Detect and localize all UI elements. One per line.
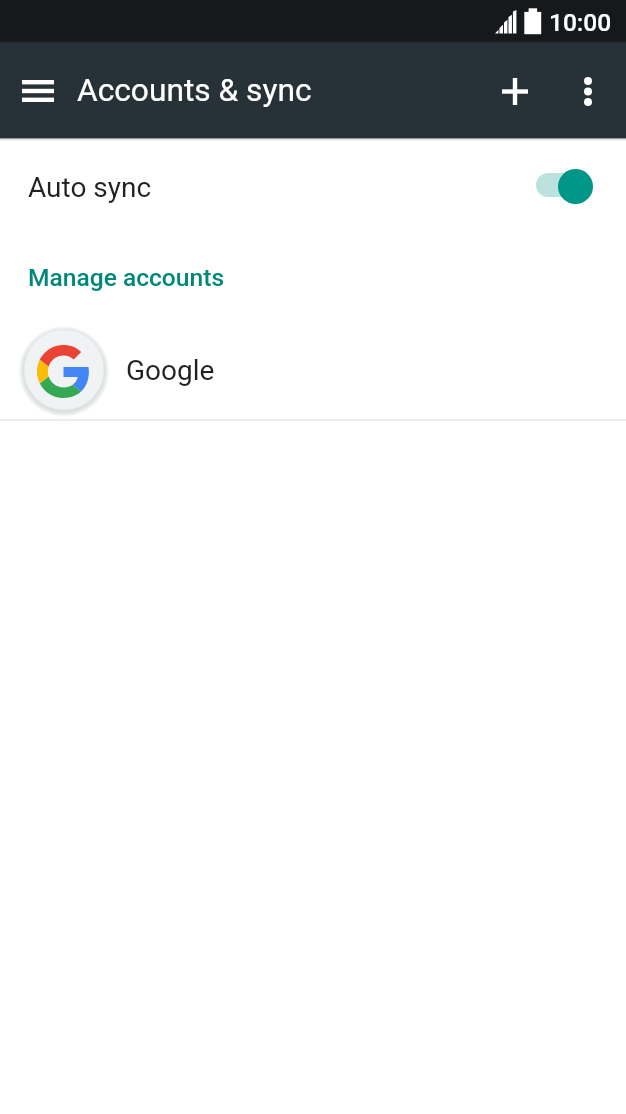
button[interactable]: More options bbox=[558, 61, 618, 121]
staticText: Google bbox=[126, 354, 215, 387]
button[interactable]: Google bbox=[0, 322, 626, 417]
staticText: 10:00 bbox=[549, 8, 612, 37]
staticText: Auto sync bbox=[28, 171, 152, 204]
staticText: Accounts & sync bbox=[77, 72, 312, 109]
button[interactable]: Add account bbox=[485, 61, 545, 121]
button[interactable]: Open navigation drawer bbox=[6, 59, 70, 123]
staticText: Manage accounts bbox=[28, 263, 225, 292]
button[interactable]: Auto sync bbox=[0, 138, 626, 235]
